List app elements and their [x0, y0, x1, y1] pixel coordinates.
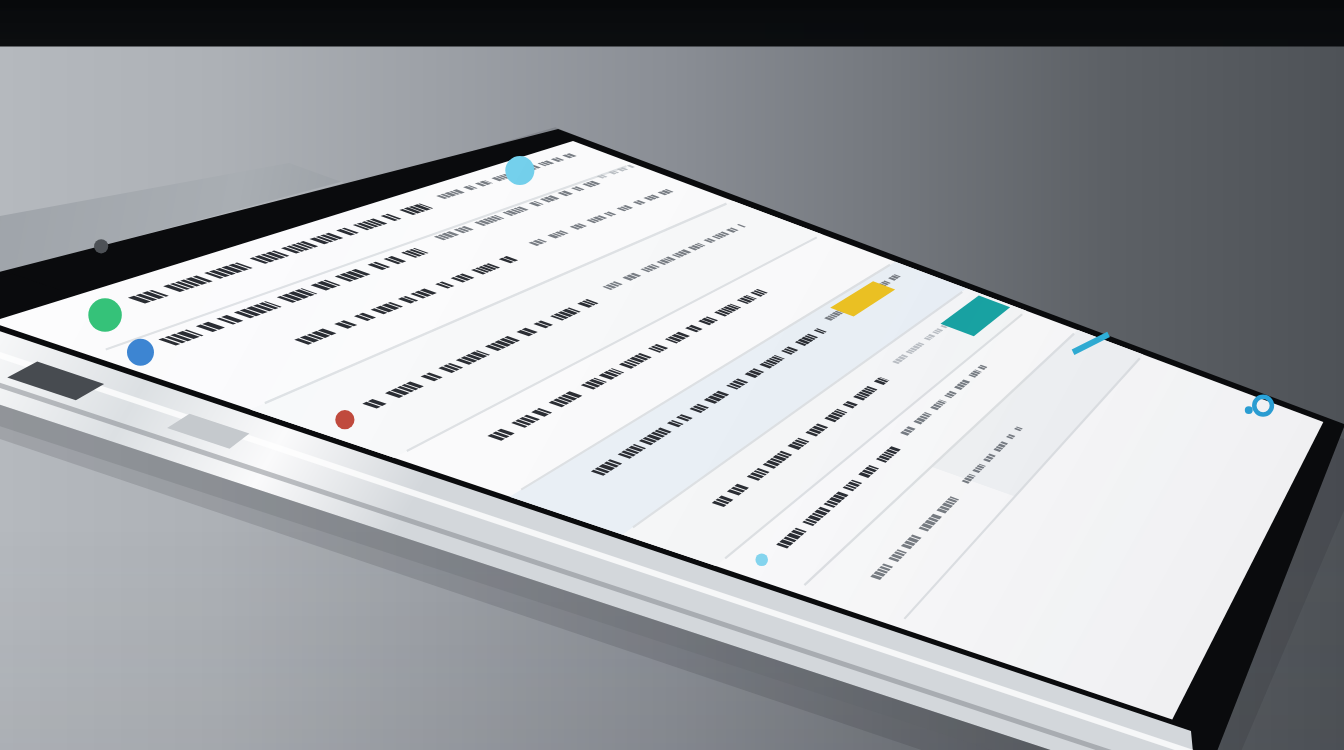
button[interactable]: Status chip [887, 300, 1075, 374]
button[interactable]: Selected list item [537, 270, 993, 374]
button[interactable]: List item 3 [268, 345, 832, 427]
button[interactable]: Folder [806, 270, 1047, 352]
button[interactable]: Profile avatar [26, 37, 402, 82]
button[interactable]: List item 2 [174, 300, 751, 374]
button[interactable]: List item 4 [376, 390, 940, 480]
button[interactable]: List item 1 [120, 247, 697, 329]
button[interactable]: Phone showing an app list screen [0, 0, 1344, 750]
button[interactable]: Search [1196, 360, 1316, 450]
